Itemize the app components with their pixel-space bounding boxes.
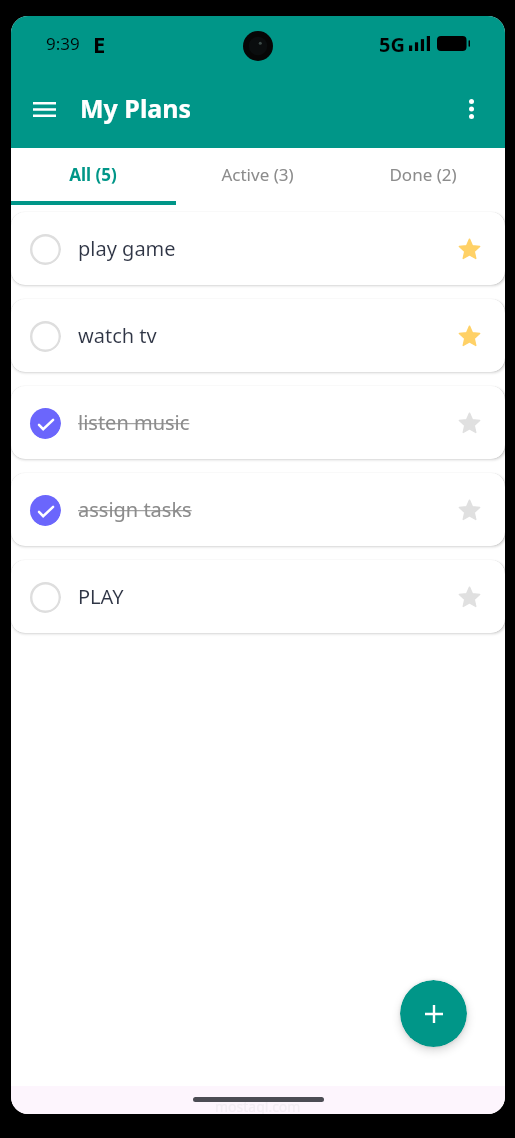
button[interactable]: Toggle favourite: [452, 493, 486, 527]
staticText: PLAY: [78, 583, 124, 610]
button[interactable]: Mark complete: [11, 560, 505, 633]
button[interactable]: Toggle favourite: [452, 406, 486, 440]
button[interactable]: Mark complete: [11, 299, 505, 372]
button[interactable]: Active (3): [175, 148, 340, 205]
button[interactable]: Mark complete: [29, 320, 61, 352]
staticText: assign tasks: [78, 496, 192, 523]
staticText: My Plans: [80, 91, 192, 125]
button[interactable]: Mark incomplete: [29, 407, 61, 439]
staticText: Active (3): [221, 163, 294, 186]
staticText: mostaql.com: [215, 1097, 301, 1114]
staticText: listen music: [78, 409, 190, 436]
button[interactable]: Toggle favourite: [452, 580, 486, 614]
button[interactable]: Open navigation menu: [22, 87, 66, 131]
button[interactable]: Mark incomplete: [11, 473, 505, 546]
button[interactable]: Mark incomplete: [11, 386, 505, 459]
button[interactable]: Add plan: [400, 980, 467, 1047]
button[interactable]: Mark complete: [29, 233, 61, 265]
staticText: All (5): [69, 163, 117, 186]
button[interactable]: Mark complete: [29, 581, 61, 613]
button[interactable]: Mark incomplete: [29, 494, 61, 526]
staticText: play game: [78, 235, 176, 262]
button[interactable]: Mark complete: [11, 212, 505, 285]
staticText: E: [93, 29, 106, 59]
staticText: 5G: [379, 31, 405, 58]
staticText: watch tv: [78, 322, 157, 349]
button[interactable]: Done (2): [340, 148, 505, 205]
button[interactable]: All (5): [11, 148, 175, 205]
button[interactable]: More options: [450, 88, 492, 130]
button[interactable]: Toggle favourite: [452, 232, 486, 266]
staticText: Done (2): [389, 163, 457, 186]
staticText: 9:39: [46, 32, 80, 55]
button[interactable]: Toggle favourite: [452, 319, 486, 353]
